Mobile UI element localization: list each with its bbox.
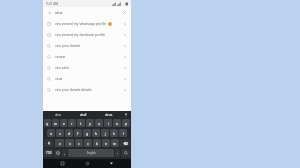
staticText: g xyxy=(86,131,89,136)
button[interactable]: Space xyxy=(68,149,114,157)
staticText: English xyxy=(87,151,96,155)
button[interactable]: Insert suggestion xyxy=(122,43,128,49)
button[interactable]: Recents xyxy=(58,159,67,168)
button[interactable]: Back xyxy=(46,9,53,16)
button[interactable]: w xyxy=(52,119,59,127)
button[interactable]: Back xyxy=(107,159,116,168)
staticText: t xyxy=(80,121,82,126)
staticText: , xyxy=(64,151,65,155)
staticText: vira cake xyxy=(55,65,69,70)
button[interactable]: i xyxy=(104,119,112,127)
staticText: k xyxy=(113,131,115,136)
staticText: l xyxy=(123,131,124,136)
staticText: vira viewed my whatsapp profile xyxy=(55,21,107,26)
staticText: virus xyxy=(105,113,113,117)
button[interactable]: g xyxy=(83,129,91,137)
button[interactable]: z xyxy=(55,139,64,147)
staticText: h xyxy=(95,131,98,136)
staticText: x xyxy=(69,141,71,146)
staticText: z xyxy=(59,141,61,146)
button[interactable]: Home xyxy=(83,159,92,168)
button[interactable]: c xyxy=(75,139,83,147)
button[interactable]: , xyxy=(62,149,67,157)
button[interactable]: Back xyxy=(43,7,131,18)
button[interactable]: Insert suggestion xyxy=(122,54,128,60)
button[interactable]: x xyxy=(65,139,74,147)
button[interactable]: m xyxy=(111,139,119,147)
button[interactable]: h xyxy=(92,129,100,137)
staticText: e xyxy=(63,121,65,126)
button[interactable]: ?123 xyxy=(44,149,53,157)
staticText: viraset xyxy=(55,54,66,59)
button[interactable]: Insert suggestion xyxy=(122,65,128,71)
button[interactable]: a xyxy=(47,129,55,137)
staticText: p xyxy=(125,121,128,126)
staticText: s xyxy=(59,131,61,136)
button[interactable]: . xyxy=(115,149,120,157)
staticText: d xyxy=(68,131,71,136)
button[interactable]: Insert suggestion xyxy=(122,87,128,93)
button[interactable]: Search xyxy=(121,149,130,157)
button[interactable]: Clear xyxy=(121,9,128,16)
button[interactable]: vira your details xyxy=(43,40,131,51)
staticText: y xyxy=(89,121,91,126)
button[interactable]: e xyxy=(60,119,67,127)
button[interactable]: r xyxy=(68,119,76,127)
button[interactable]: viras xyxy=(43,73,131,84)
staticText: ?123 xyxy=(46,151,52,155)
button[interactable]: l xyxy=(119,129,127,137)
button[interactable]: Emoji xyxy=(54,149,61,157)
staticText: c xyxy=(78,141,80,146)
button[interactable]: q xyxy=(44,119,51,127)
staticText: viras xyxy=(55,76,63,81)
staticText: i xyxy=(108,121,109,126)
button[interactable]: Insert suggestion xyxy=(122,32,128,38)
button[interactable]: Backspace xyxy=(120,139,130,147)
staticText: viral xyxy=(80,113,87,117)
button[interactable]: Voice input xyxy=(122,111,129,118)
button[interactable]: u xyxy=(95,119,103,127)
staticText: vira your details xyxy=(55,43,81,48)
staticText: v xyxy=(87,141,89,146)
button[interactable]: k xyxy=(110,129,118,137)
button[interactable]: t xyxy=(77,119,85,127)
button[interactable]: Shift xyxy=(44,139,54,147)
staticText: b xyxy=(96,141,99,146)
button[interactable]: v xyxy=(84,139,92,147)
button[interactable]: vira xyxy=(45,111,70,118)
button[interactable]: vira cake xyxy=(43,62,131,73)
staticText: n xyxy=(105,141,108,146)
staticText: u xyxy=(98,121,101,126)
staticText: 9:41 AM xyxy=(46,2,59,6)
staticText: vira viewed my facebook profile xyxy=(55,32,106,37)
button[interactable]: viral xyxy=(70,111,96,118)
staticText: o xyxy=(116,121,119,126)
staticText: r xyxy=(71,121,73,126)
staticText: m xyxy=(113,141,117,146)
button[interactable]: vira viewed my facebook profile xyxy=(43,29,131,40)
staticText: vira your details details xyxy=(55,87,92,92)
button[interactable]: d xyxy=(65,129,73,137)
button[interactable]: vira your details details xyxy=(43,84,131,95)
button[interactable]: n xyxy=(102,139,110,147)
staticText: f xyxy=(77,131,79,136)
button[interactable]: s xyxy=(56,129,64,137)
button[interactable]: virus xyxy=(96,111,122,118)
button[interactable]: p xyxy=(122,119,130,127)
button[interactable]: vira viewed my whatsapp profile xyxy=(43,18,131,29)
button[interactable]: b xyxy=(93,139,101,147)
button[interactable]: y xyxy=(86,119,94,127)
button[interactable]: o xyxy=(113,119,121,127)
button[interactable]: Insert suggestion xyxy=(122,76,128,82)
staticText: a xyxy=(50,131,52,136)
button[interactable]: viraset xyxy=(43,51,131,62)
staticText: j xyxy=(105,131,106,136)
staticText: vira xyxy=(55,113,61,117)
button[interactable]: Insert suggestion xyxy=(122,21,128,27)
staticText: w xyxy=(54,121,57,126)
staticText: q xyxy=(46,121,49,126)
staticText: vira xyxy=(55,10,63,16)
button[interactable]: j xyxy=(101,129,109,137)
button[interactable]: f xyxy=(74,129,82,137)
staticText: . xyxy=(117,151,118,155)
